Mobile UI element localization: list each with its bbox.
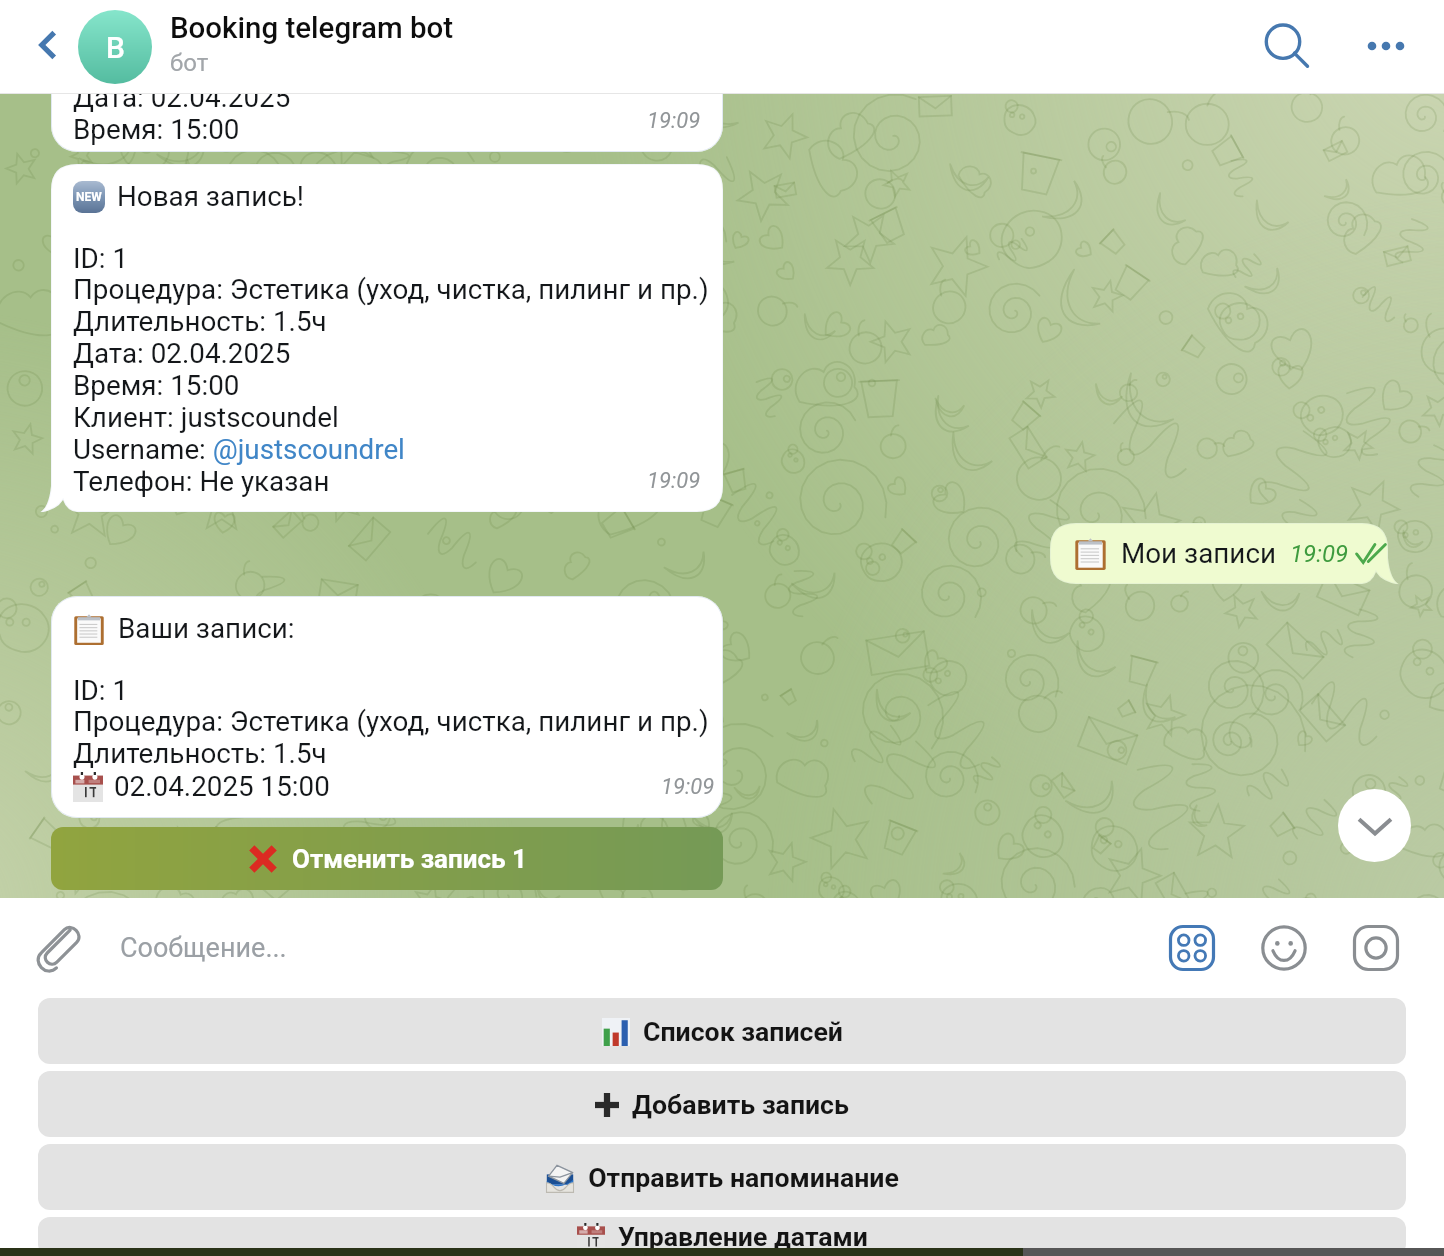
button[interactable]: Scroll to bottom bbox=[1338, 789, 1411, 862]
staticText: Список записей bbox=[643, 1016, 843, 1047]
button[interactable]: Back bbox=[0, 0, 78, 93]
staticText: Новая запись! bbox=[117, 180, 304, 213]
button[interactable]: NEW bbox=[39, 164, 723, 512]
button[interactable]: Attach file bbox=[0, 898, 118, 998]
staticText: B bbox=[106, 30, 125, 65]
button[interactable]: Процедура: Эстетика (уход, чистка, пилин… bbox=[51, 2, 723, 152]
button[interactable]: Emoji bbox=[1238, 902, 1330, 994]
staticText: Отменить запись 1 bbox=[292, 844, 527, 874]
button[interactable]: Мои записи bbox=[1050, 523, 1400, 584]
staticText: Ваши записи: bbox=[118, 612, 295, 645]
staticText: 02.04.2025 15:00 bbox=[114, 770, 330, 803]
staticText: Booking telegram bot bbox=[170, 11, 454, 46]
button[interactable]: Список записей bbox=[38, 998, 1406, 1064]
staticText: Отправить напоминание bbox=[588, 1162, 899, 1193]
button[interactable]: Отправить напоминание bbox=[38, 1144, 1406, 1210]
button[interactable]: Ваши записи: bbox=[51, 596, 723, 818]
button[interactable]: Search bbox=[1240, 0, 1332, 91]
staticText: Добавить запись bbox=[632, 1089, 849, 1120]
staticText: 19:09 bbox=[647, 108, 701, 134]
staticText: Управление датами bbox=[618, 1221, 868, 1252]
staticText: 19:09 bbox=[1290, 540, 1349, 568]
staticText: Сообщение... bbox=[120, 932, 287, 964]
staticText: Процедура: Эстетика (уход, чистка, пилин… bbox=[73, 18, 709, 146]
button[interactable]: Bot commands bbox=[1146, 902, 1238, 994]
staticText: ID: 1 Процедура: Эстетика (уход, чистка,… bbox=[73, 674, 709, 770]
staticText: бот bbox=[170, 49, 209, 77]
button[interactable]: Добавить запись bbox=[38, 1071, 1406, 1137]
staticText: 19:09 bbox=[661, 774, 715, 800]
button[interactable]: Отменить запись 1 bbox=[51, 827, 723, 890]
staticText: Мои записи bbox=[1121, 537, 1276, 570]
button[interactable]: Record video message bbox=[1330, 902, 1422, 994]
button[interactable]: Управление датами bbox=[38, 1217, 1406, 1256]
staticText: ID: 1 Процедура: Эстетика (уход, чистка,… bbox=[73, 242, 709, 498]
staticText: 19:09 bbox=[647, 468, 701, 494]
staticText: NEW bbox=[76, 190, 102, 204]
button[interactable]: More options bbox=[1332, 0, 1440, 92]
